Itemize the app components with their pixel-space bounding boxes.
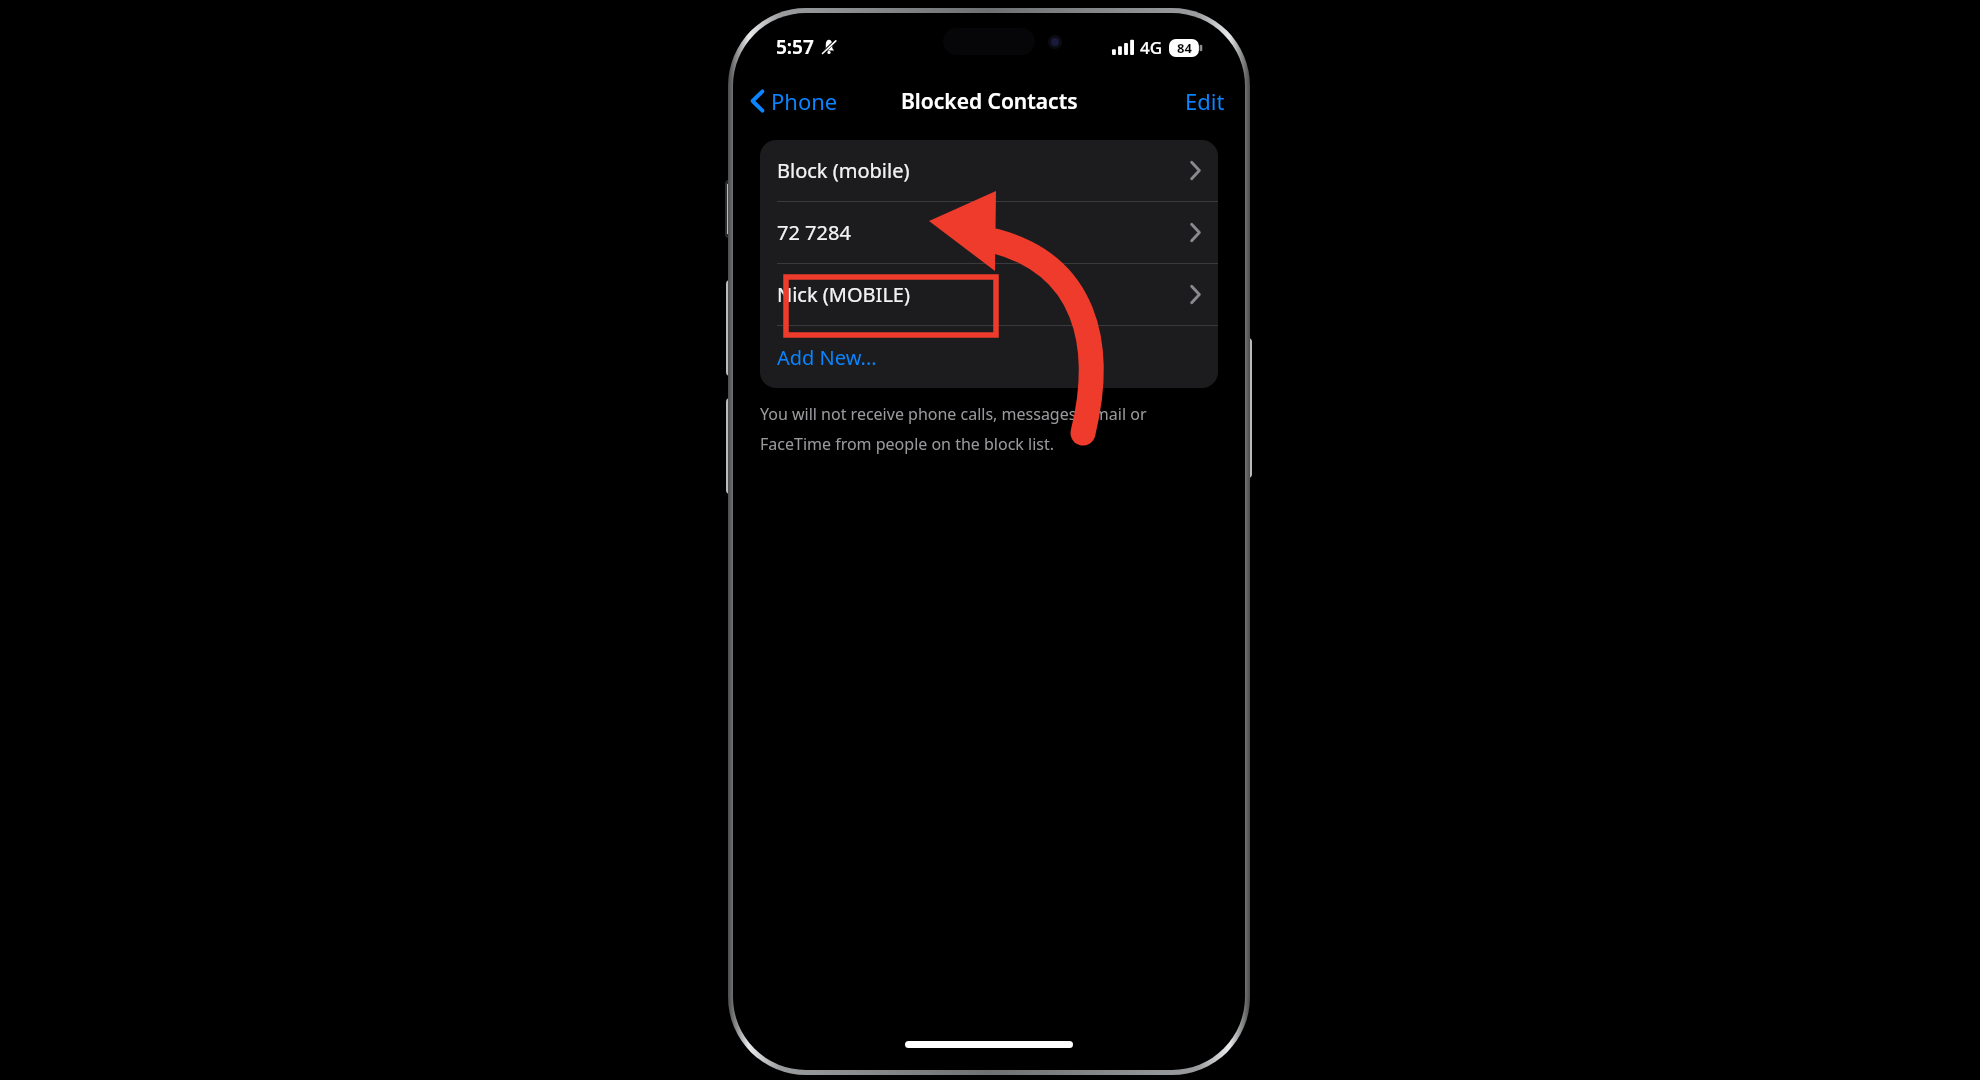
staticText: Add New... [777, 344, 877, 371]
staticText: Nick (MOBILE) [777, 281, 910, 308]
staticText: 4G [1140, 36, 1163, 59]
staticText: Block (mobile) [777, 157, 910, 184]
staticText: 72 7284 [777, 219, 851, 246]
staticText: Edit [1185, 86, 1225, 116]
staticText: Phone [771, 86, 838, 116]
button[interactable]: Add New... [760, 326, 1218, 388]
staticText: FaceTime from people on the block list. [760, 433, 1055, 455]
staticText: 5:57 [776, 34, 814, 60]
button[interactable]: 72 7284 [760, 202, 1218, 263]
staticText: 84 [1177, 39, 1192, 57]
button[interactable]: Block (mobile) [760, 140, 1218, 201]
button[interactable]: Edit [1177, 82, 1233, 120]
staticText: You will not receive phone calls, messag… [760, 403, 1147, 425]
button[interactable]: Nick (MOBILE) [760, 264, 1218, 325]
button[interactable]: Phone [745, 82, 844, 120]
staticText: Blocked Contacts [901, 87, 1078, 116]
